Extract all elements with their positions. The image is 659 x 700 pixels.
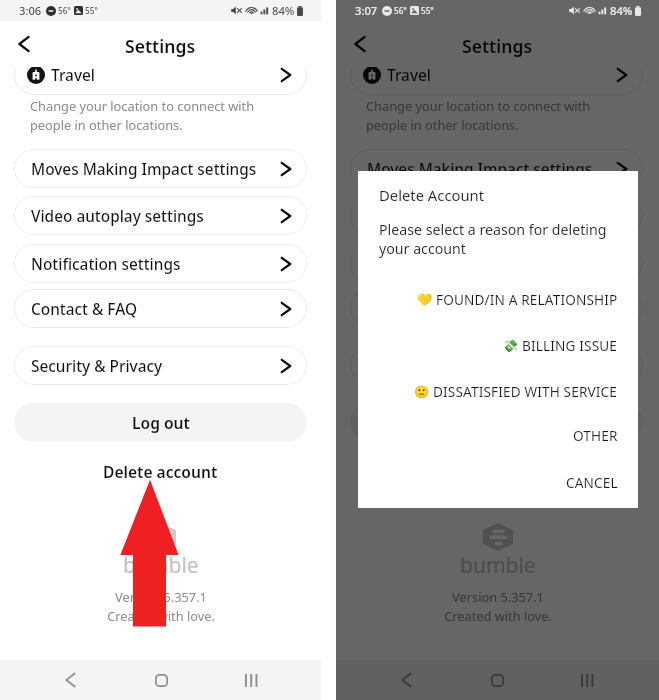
staticText: Contact & FAQ <box>31 299 137 320</box>
staticText: Contact & FAQ <box>367 299 473 320</box>
button[interactable]: Video autoplay settings <box>14 196 307 235</box>
button[interactable]: Video autoplay settings <box>350 196 643 235</box>
staticText: Settings <box>125 34 196 58</box>
button[interactable]: OTHER <box>358 413 638 457</box>
staticText: CANCEL <box>566 473 618 492</box>
button[interactable]: Back <box>9 29 39 59</box>
staticText: 55° <box>421 5 434 16</box>
staticText: Version 5.357.1 <box>115 588 207 605</box>
staticText: OTHER <box>573 426 618 445</box>
staticText: Settings <box>462 34 533 58</box>
staticText: bumble <box>123 551 199 580</box>
button[interactable]: Back <box>387 660 425 700</box>
staticText: Moves Making Impact settings <box>31 159 257 180</box>
staticText: 3:07 <box>355 3 378 18</box>
staticText: 55° <box>85 5 98 16</box>
button[interactable]: Home <box>478 660 516 700</box>
button[interactable]: 🙁 <box>358 369 638 413</box>
staticText: Travel <box>387 67 431 86</box>
button[interactable]: Delete account <box>336 458 659 484</box>
staticText: 3:06 <box>19 3 42 18</box>
staticText: Video autoplay settings <box>31 206 204 227</box>
button[interactable]: Delete account <box>0 458 321 484</box>
staticText: BILLING ISSUE <box>522 336 618 355</box>
button[interactable]: Travel <box>14 67 307 95</box>
button[interactable]: CANCEL <box>358 460 638 504</box>
button[interactable]: Security & Privacy <box>350 346 643 385</box>
button[interactable]: Home <box>142 660 180 700</box>
button[interactable]: Contact & FAQ <box>14 289 307 328</box>
staticText: FOUND/IN A RELATIONSHIP <box>436 290 618 309</box>
button[interactable]: Security & Privacy <box>14 346 307 385</box>
button[interactable]: Notification settings <box>350 244 643 283</box>
staticText: Security & Privacy <box>31 356 163 377</box>
button[interactable]: Contact & FAQ <box>350 289 643 328</box>
button[interactable]: Back <box>51 660 89 700</box>
button[interactable]: Travel <box>350 67 643 95</box>
staticText: DISSATISFIED WITH SERVICE <box>433 382 618 401</box>
staticText: Created with love. <box>107 607 215 624</box>
staticText: Video autoplay settings <box>367 206 540 227</box>
staticText: Log out <box>132 412 190 433</box>
staticText: Version 5.357.1 <box>452 588 544 605</box>
staticText: Travel <box>51 67 95 86</box>
staticText: bumble <box>460 551 536 580</box>
button[interactable]: Moves Making Impact settings <box>14 149 307 188</box>
staticText: Notification settings <box>367 254 517 275</box>
button[interactable]: Recent apps <box>232 660 270 700</box>
staticText: 💛 <box>417 293 433 307</box>
staticText: 84% <box>272 3 295 18</box>
staticText: Notification settings <box>31 254 181 275</box>
staticText: Delete account <box>103 461 218 482</box>
staticText: 56° <box>58 5 71 16</box>
staticText: Please select a reason for deleting your… <box>379 220 607 259</box>
button[interactable]: Log out <box>14 403 307 442</box>
staticText: Moves Making Impact settings <box>367 159 593 180</box>
button[interactable]: Log out <box>350 403 643 442</box>
staticText: 56° <box>394 5 407 16</box>
button[interactable]: Moves Making Impact settings <box>350 149 643 188</box>
staticText: Delete Account <box>379 185 485 205</box>
staticText: 💸 <box>503 339 519 353</box>
button[interactable]: Back <box>345 29 375 59</box>
staticText: 🙁 <box>414 385 430 399</box>
staticText: Change your location to connect with peo… <box>30 97 255 133</box>
staticText: Created with love. <box>444 607 552 624</box>
button[interactable]: 💸 <box>358 323 638 367</box>
staticText: Change your location to connect with peo… <box>366 97 591 133</box>
staticText: 84% <box>610 3 633 18</box>
button[interactable]: 💛 <box>358 277 638 321</box>
button[interactable]: Notification settings <box>14 244 307 283</box>
button[interactable]: Recent apps <box>568 660 606 700</box>
